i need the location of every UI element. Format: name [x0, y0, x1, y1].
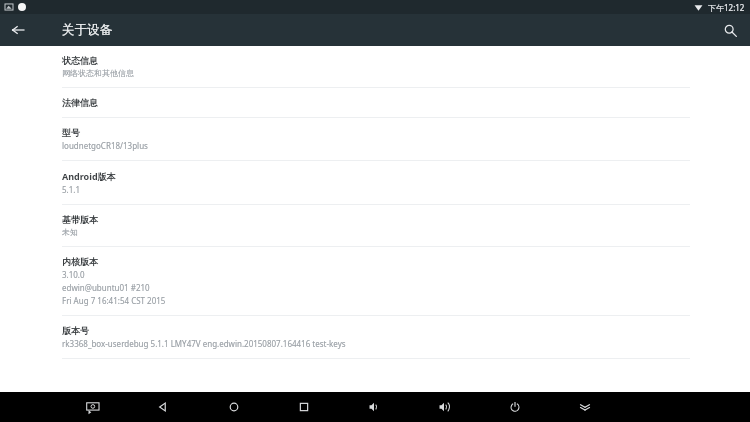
- staticText: 内核版本: [62, 256, 98, 267]
- button[interactable]: Home: [219, 392, 249, 422]
- button[interactable]: Search: [716, 16, 744, 44]
- button[interactable]: Back: [4, 16, 32, 44]
- staticText: Android版本: [62, 170, 116, 182]
- button[interactable]: Hide: [570, 392, 600, 422]
- button[interactable]: 型号: [0, 118, 750, 160]
- staticText: rk3368_box-userdebug 5.1.1 LMY47V eng.ed…: [62, 338, 346, 349]
- button[interactable]: Volume up: [429, 392, 459, 422]
- button[interactable]: Volume down: [359, 392, 389, 422]
- button[interactable]: 法律信息: [0, 88, 750, 117]
- staticText: loudnetgoCR18/13plus: [62, 140, 148, 151]
- staticText: 法律信息: [62, 97, 98, 108]
- staticText: 网络状态和其他信息: [62, 68, 134, 78]
- button[interactable]: Recents: [289, 392, 319, 422]
- button[interactable]: Android版本: [0, 161, 750, 204]
- button[interactable]: Back: [148, 392, 178, 422]
- staticText: 状态信息: [62, 55, 98, 66]
- button[interactable]: Power: [500, 392, 530, 422]
- staticText: 3.10.0: [62, 269, 85, 280]
- staticText: 基带版本: [62, 214, 98, 225]
- button[interactable]: 内核版本: [0, 247, 750, 315]
- staticText: Fri Aug 7 16:41:54 CST 2015: [62, 295, 166, 306]
- staticText: 型号: [62, 127, 80, 138]
- staticText: 版本号: [62, 325, 89, 336]
- staticText: 未知: [62, 227, 78, 237]
- staticText: 下午12:12: [708, 2, 745, 13]
- button[interactable]: 基带版本: [0, 205, 750, 246]
- button[interactable]: Screenshot: [78, 392, 108, 422]
- staticText: 5.1.1: [62, 184, 81, 195]
- button[interactable]: 状态信息: [0, 46, 750, 87]
- staticText: edwin@ubuntu01 #210: [62, 282, 150, 293]
- button[interactable]: 版本号: [0, 316, 750, 358]
- staticText: 关于设备: [62, 22, 112, 38]
